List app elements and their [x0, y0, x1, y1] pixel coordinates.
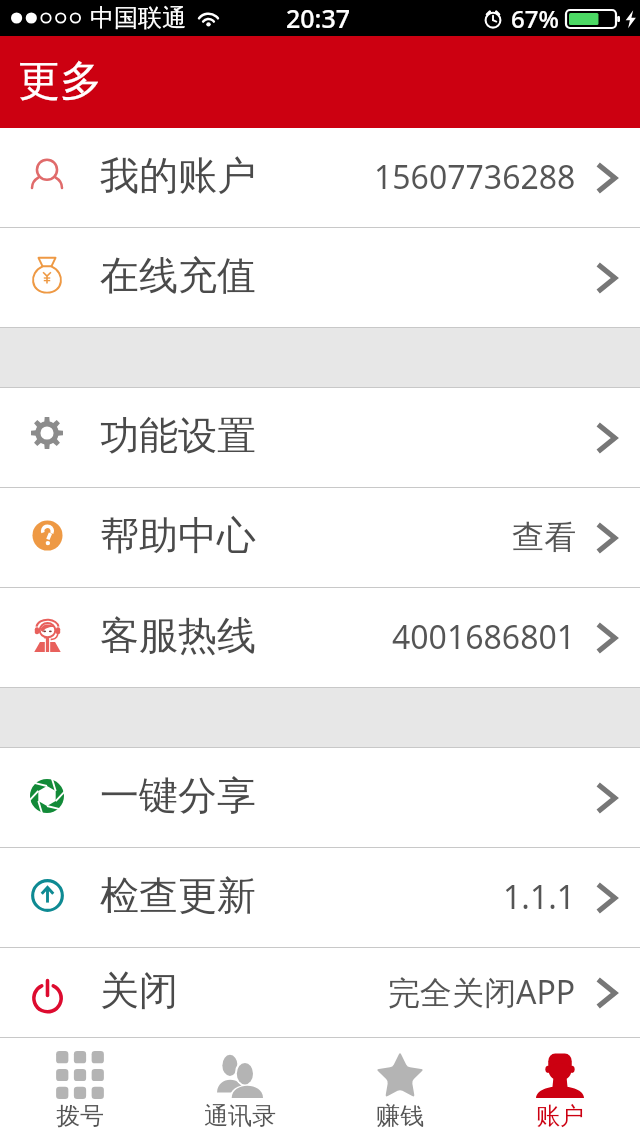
staticText: 帮助中心 [100, 511, 256, 560]
staticText: 中国联通 [90, 3, 186, 33]
staticText: 完全关闭APP [388, 970, 576, 1014]
staticText: 关闭 [100, 966, 178, 1015]
button[interactable]: 赚钱 [320, 1038, 480, 1136]
staticText: 15607736288 [374, 155, 576, 199]
button[interactable]: 账户 [480, 1038, 640, 1136]
button[interactable]: 通讯录 [160, 1038, 320, 1136]
staticText: 查看 [512, 517, 576, 557]
staticText: 客服热线 [100, 611, 256, 660]
staticText: 一键分享 [100, 771, 256, 820]
staticText: 功能设置 [100, 411, 256, 460]
staticText: 拨号 [56, 1101, 104, 1131]
button[interactable]: 在线充值 [0, 228, 640, 327]
staticText: 更多 [18, 55, 102, 108]
button[interactable]: 检查更新 [0, 848, 640, 947]
button[interactable]: 客服热线 [0, 588, 640, 687]
staticText: 1.1.1 [503, 875, 576, 919]
staticText: 检查更新 [100, 871, 256, 920]
staticText: 4001686801 [392, 615, 576, 659]
staticText: 67% [511, 2, 559, 35]
staticText: 我的账户 [100, 151, 256, 200]
staticText: 赚钱 [376, 1101, 424, 1131]
staticText: 账户 [536, 1101, 584, 1131]
button[interactable]: 我的账户 [0, 128, 640, 227]
staticText: 通讯录 [204, 1101, 276, 1131]
staticText: 在线充值 [100, 251, 256, 300]
button[interactable]: 关闭 [0, 948, 640, 1037]
button[interactable]: 功能设置 [0, 388, 640, 487]
button[interactable]: 帮助中心 [0, 488, 640, 587]
button[interactable]: 拨号 [0, 1038, 160, 1136]
button[interactable]: 一键分享 [0, 748, 640, 847]
staticText: 20:37 [286, 1, 351, 35]
